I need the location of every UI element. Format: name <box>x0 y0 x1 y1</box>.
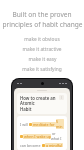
button[interactable]: More options <box>59 95 64 100</box>
staticText: make it obvious <box>24 36 60 43</box>
staticText: meditate for <box>32 122 56 127</box>
staticText: Built on the proven <box>12 10 72 19</box>
staticText: make it easy <box>28 56 57 63</box>
staticText: can become <box>20 143 42 147</box>
button[interactable]: How to create an Atomic <box>17 93 67 114</box>
staticText: make it satisfying <box>22 66 62 73</box>
staticText: a mindful <box>45 143 63 147</box>
staticText: I will <box>20 122 29 127</box>
staticText: make it attractive <box>22 46 62 53</box>
staticText: Habit <box>20 106 32 112</box>
staticText: principles of habit change <box>2 20 83 29</box>
staticText: or what I <box>51 131 64 141</box>
button[interactable]: I will <box>17 116 67 150</box>
staticText: 5 min <box>56 119 64 129</box>
staticText: when I wake up <box>23 134 51 139</box>
staticText: How to create an Atomic <box>20 95 59 106</box>
